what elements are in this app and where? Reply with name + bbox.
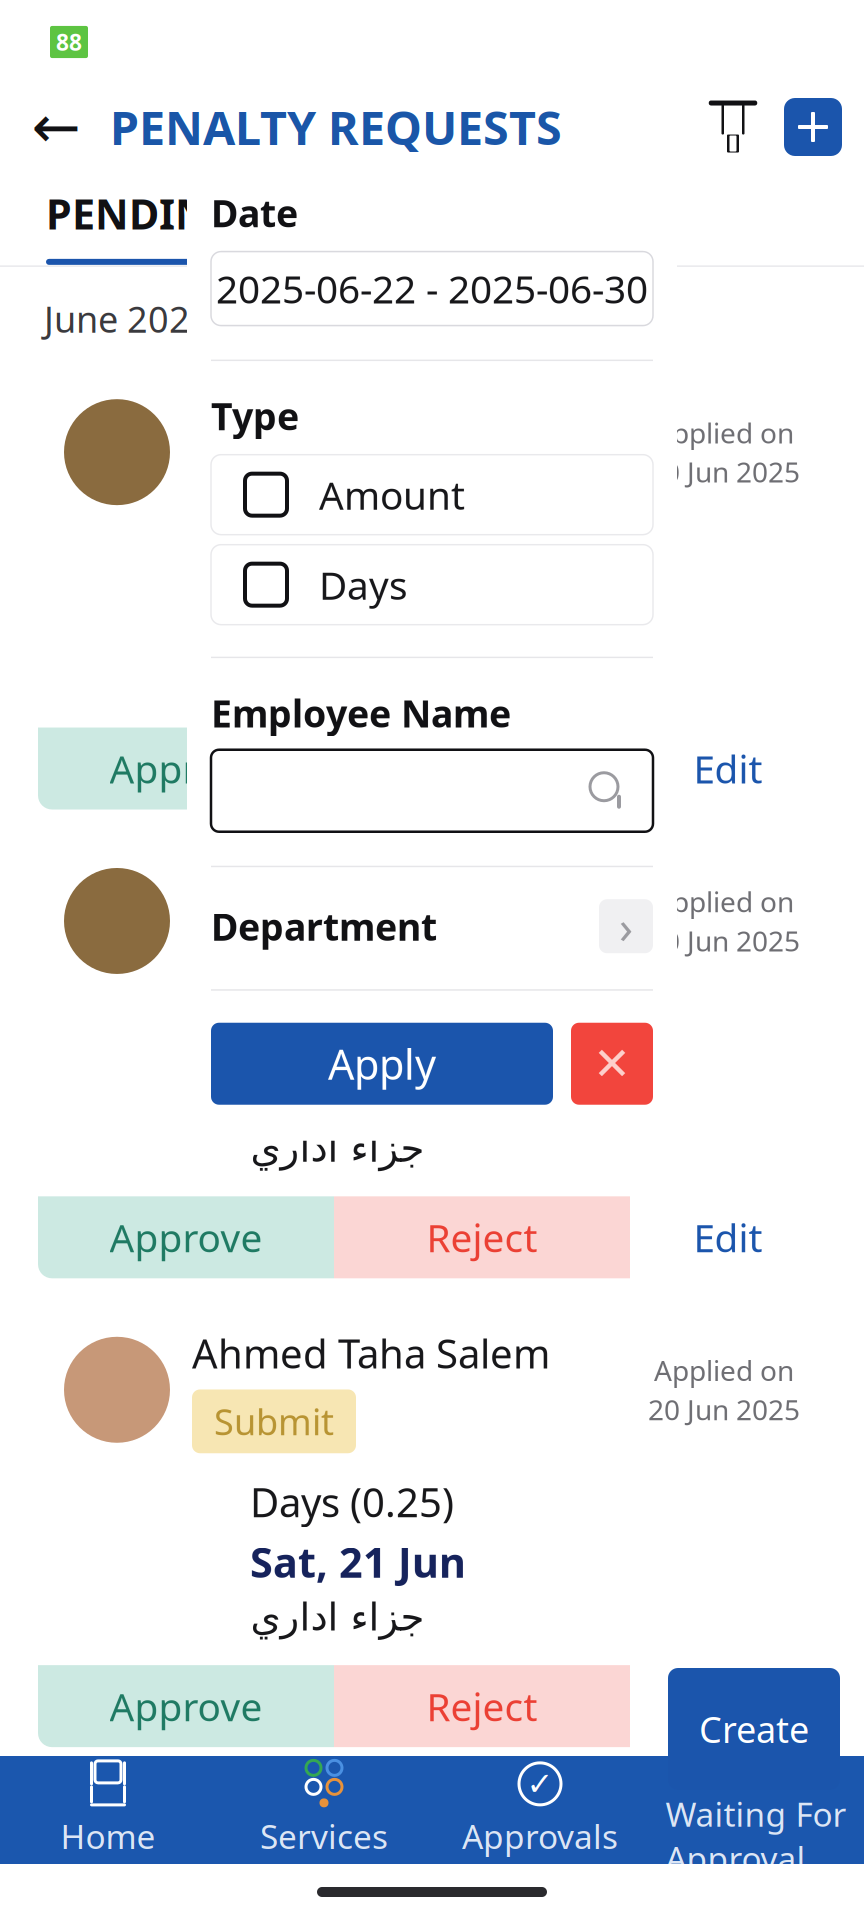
button[interactable]: Services — [216, 1756, 432, 1864]
staticText: Submit — [214, 929, 334, 976]
button[interactable]: Filter — [700, 94, 766, 160]
staticText: جزاء اداري — [250, 658, 424, 701]
staticText: Department — [211, 901, 437, 951]
staticText: Create — [699, 1705, 809, 1753]
staticText: Sun, 22 Jun — [250, 597, 477, 652]
button[interactable]: Approve — [38, 727, 334, 809]
staticText: Approve — [109, 1680, 262, 1732]
staticText: 20 Jun 2025 — [648, 453, 800, 490]
staticText: Sat, 21 Jun — [250, 1534, 466, 1589]
staticText: › — [619, 896, 633, 956]
staticText: Ahmed Taha Salem — [192, 1326, 550, 1379]
staticText: Services — [260, 1814, 388, 1858]
staticText: Reject — [426, 1680, 537, 1732]
staticText: Reject — [426, 1212, 537, 1263]
staticText: جزاء اداري — [250, 1126, 424, 1170]
button[interactable]: Add — [784, 98, 842, 156]
staticText: 20 Jun 2025 — [648, 1391, 800, 1428]
button[interactable]: 2025-06-22 - 2025-06-30 — [211, 252, 653, 326]
button[interactable]: Close — [571, 1023, 653, 1105]
button[interactable]: Edit — [630, 1196, 826, 1278]
staticText: ← — [31, 94, 80, 160]
button[interactable]: Back — [20, 91, 92, 163]
staticText: PENDING REQUESTS — [46, 186, 457, 241]
staticText: Edit — [693, 1680, 762, 1732]
button[interactable]: Department — [187, 883, 677, 969]
button[interactable]: Search employee name — [211, 750, 653, 832]
button[interactable]: Reject — [334, 727, 630, 809]
staticText: Employee Name — [211, 688, 511, 738]
button[interactable]: Create — [668, 1668, 840, 1790]
staticText: Edit — [693, 743, 762, 794]
button[interactable]: Reject — [334, 1665, 630, 1747]
staticText: Amount (100) — [250, 1006, 504, 1059]
button[interactable]: Approve — [38, 1196, 334, 1278]
staticText: Submit — [214, 460, 334, 508]
button[interactable]: ✓ — [432, 1756, 648, 1864]
staticText: Applied on — [654, 1352, 794, 1389]
button[interactable]: Approve — [38, 1665, 334, 1747]
staticText: Home — [60, 1814, 155, 1858]
staticText: Approve — [109, 743, 262, 794]
staticText: 88 — [56, 27, 82, 57]
button[interactable]: Reject — [334, 1196, 630, 1278]
staticText: Applied on — [654, 414, 794, 451]
staticText: Sun, 22 Jun — [250, 1066, 477, 1120]
button[interactable]: Edit — [630, 1665, 826, 1747]
staticText: Days (0.5) — [250, 538, 431, 591]
staticText: ✓ — [526, 1766, 553, 1802]
staticText: جزاء اداري — [250, 1595, 424, 1639]
staticText: Edit — [693, 1212, 762, 1263]
button[interactable]: Home — [0, 1756, 216, 1864]
staticText: Approvals — [462, 1814, 618, 1858]
button[interactable]: Waiting For Approval — [648, 1756, 864, 1864]
staticText: Sha — [192, 857, 261, 911]
staticText: Approve — [109, 1212, 262, 1263]
staticText: Apply — [328, 1036, 436, 1091]
button[interactable]: PENDING REQUESTS — [46, 170, 457, 257]
staticText: 20 Jun 2025 — [648, 922, 800, 959]
staticText: Applied on — [654, 883, 794, 920]
staticText: 2025-06-22 - 2025-06-30 — [216, 263, 648, 314]
staticText: Amount — [319, 469, 465, 520]
staticText: ✕ — [593, 1038, 631, 1089]
staticText: Waiting For Approval — [665, 1792, 846, 1880]
staticText: Days (0.25) — [250, 1475, 454, 1528]
button[interactable]: Amount — [211, 455, 653, 535]
button[interactable]: Edit — [630, 727, 826, 809]
staticText: Type — [211, 391, 299, 441]
staticText: Reject — [426, 743, 537, 794]
staticText: Submit — [214, 1397, 334, 1445]
button[interactable]: Apply — [211, 1023, 553, 1105]
staticText: Days — [319, 559, 408, 610]
staticText: Date — [211, 188, 298, 238]
staticText: June 2025 — [44, 295, 211, 343]
staticText: Sha — [192, 389, 261, 442]
button[interactable]: Days — [211, 545, 653, 625]
staticText: PENALTY REQUESTS — [110, 96, 562, 158]
